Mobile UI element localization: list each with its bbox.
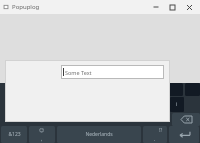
staticText: &123 (8, 131, 21, 138)
staticText: Some Text (65, 69, 92, 76)
button[interactable]: Key (168, 83, 183, 96)
button[interactable]: &123 (1, 126, 27, 143)
button[interactable]: Maximize (164, 0, 181, 14)
staticText: , (41, 136, 43, 143)
button[interactable]: Minimize (147, 0, 164, 14)
button[interactable]: Period (143, 126, 167, 143)
button[interactable]: Nederlands (57, 126, 141, 143)
staticText: Nederlands (85, 131, 113, 138)
button[interactable]: Enter (169, 126, 199, 143)
button[interactable]: Comma and emoji (29, 126, 55, 143)
staticText: ☺ (39, 127, 45, 133)
button[interactable]: Close (181, 0, 198, 14)
button[interactable]: Key (170, 97, 184, 112)
staticText: !? (159, 127, 163, 133)
button[interactable]: Some Text (61, 65, 164, 79)
button[interactable]: Backspace (172, 113, 200, 126)
staticText: . (154, 136, 156, 143)
staticText: Popuplog (12, 3, 40, 11)
staticText: i (176, 101, 178, 108)
